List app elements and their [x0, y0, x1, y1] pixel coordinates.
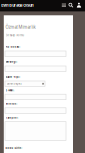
- button[interactable]: Search: [69, 3, 73, 7]
- staticText: Kodu Girin:: [6, 147, 23, 150]
- staticText: Mesleği:: [6, 60, 18, 63]
- staticText: Lütfen Seçiniz: [6, 82, 21, 85]
- staticText: Ad Soyad:: [6, 45, 21, 48]
- staticText: Talepler:: [6, 116, 19, 119]
- staticText: Ön Talep Formu: [6, 34, 24, 37]
- staticText: Telefon:: [6, 102, 18, 105]
- staticText: Evin Burada Olsun: [1, 3, 33, 8]
- button[interactable]: Account: [77, 3, 81, 8]
- staticText: Daire Tipi:: [6, 76, 21, 79]
- button[interactable]: Menu: [62, 4, 66, 7]
- staticText: Özmat Mimarlık: [6, 25, 36, 30]
- staticText: E-Mail:: [6, 89, 15, 92]
